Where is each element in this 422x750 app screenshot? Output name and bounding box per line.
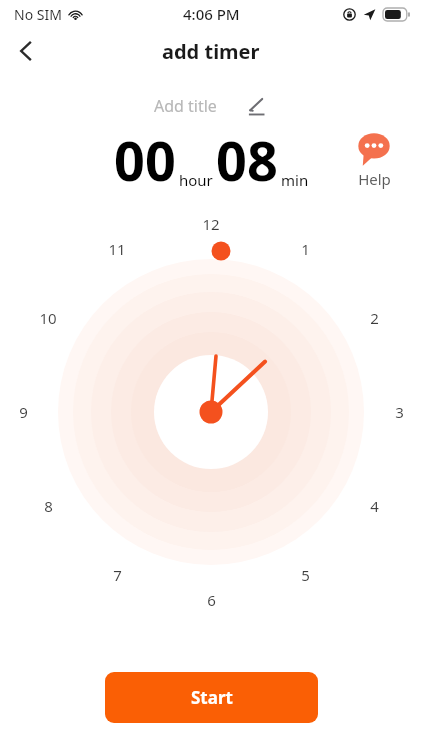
button[interactable]: Add title	[154, 93, 269, 119]
button[interactable]: Back	[4, 29, 48, 73]
staticText: 4:06 PM	[183, 4, 240, 24]
staticText: hour	[179, 170, 213, 190]
staticText: 00	[114, 123, 176, 197]
staticText: 1	[301, 239, 310, 259]
staticText: 7	[113, 565, 122, 585]
other: Edit title	[243, 93, 269, 119]
button[interactable]: Help	[347, 132, 401, 189]
staticText: 10	[39, 308, 57, 328]
staticText: 11	[108, 239, 126, 259]
staticText: 4	[370, 496, 379, 516]
staticText: No SIM	[14, 5, 62, 24]
staticText: Start	[191, 686, 233, 709]
staticText: Help	[358, 169, 391, 189]
staticText: 9	[19, 402, 28, 422]
staticText: 2	[370, 308, 379, 328]
staticText: add timer	[162, 38, 260, 65]
staticText: Add title	[154, 95, 217, 117]
staticText: min	[281, 170, 309, 190]
staticText: 6	[207, 590, 216, 610]
button[interactable]: 00	[114, 123, 309, 197]
staticText: 5	[301, 565, 310, 585]
staticText: 08	[216, 123, 278, 197]
button[interactable]: Start	[105, 672, 318, 723]
staticText: 3	[395, 402, 404, 422]
staticText: 8	[44, 496, 53, 516]
button[interactable]: Timer dial	[0, 0, 422, 750]
staticText: 12	[202, 214, 220, 234]
